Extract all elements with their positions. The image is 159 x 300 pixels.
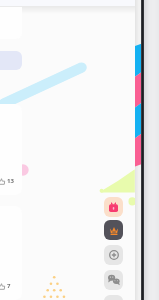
button[interactable]: WeChat	[104, 270, 123, 290]
button[interactable]: More	[104, 295, 123, 300]
button[interactable]: VIP	[104, 220, 123, 240]
button[interactable]: 13	[0, 104, 22, 195]
staticText: 13	[7, 177, 14, 185]
button[interactable]: Gift	[104, 197, 123, 217]
staticText: 7	[7, 282, 11, 290]
button[interactable]: Add	[104, 245, 123, 265]
button[interactable]: 7	[0, 206, 22, 300]
